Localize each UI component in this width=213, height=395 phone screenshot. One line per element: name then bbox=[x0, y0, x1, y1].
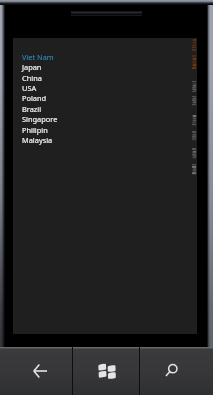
staticText: Poland bbox=[22, 93, 47, 103]
button[interactable]: Malaysia bbox=[22, 135, 142, 145]
button[interactable]: Philipin bbox=[22, 125, 142, 135]
staticText: USA bbox=[22, 83, 37, 93]
button[interactable]: Back bbox=[0, 347, 72, 395]
button[interactable]: USA bbox=[22, 83, 142, 93]
button[interactable]: Japan bbox=[22, 62, 142, 72]
staticText: Malaysia bbox=[22, 135, 53, 145]
staticText: China bbox=[22, 73, 42, 83]
button[interactable]: Viet Nam bbox=[22, 52, 142, 62]
button[interactable]: Brazil bbox=[22, 104, 142, 114]
staticText: Singapore bbox=[22, 114, 58, 124]
button[interactable]: Search bbox=[140, 347, 213, 395]
staticText: Brazil bbox=[22, 104, 42, 114]
button[interactable]: Singapore bbox=[22, 114, 142, 124]
button[interactable]: Poland bbox=[22, 93, 142, 103]
staticText: Philipin bbox=[22, 125, 48, 135]
staticText: Viet Nam bbox=[22, 52, 54, 62]
button[interactable]: China bbox=[22, 73, 142, 83]
staticText: Japan bbox=[22, 62, 42, 72]
button[interactable]: Start bbox=[73, 347, 139, 395]
